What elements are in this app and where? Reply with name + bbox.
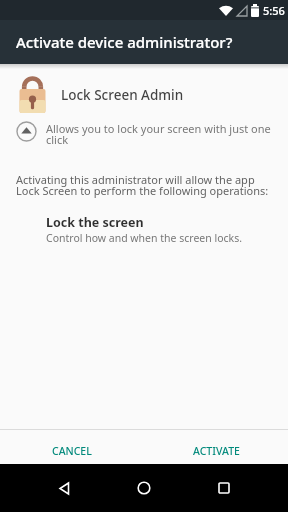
staticText: Lock the screen [46,214,144,231]
staticText: Activate device administrator? [16,32,233,52]
staticText: CANCEL [52,444,92,458]
button[interactable] [104,464,184,512]
staticText: ACTIVATE [193,444,240,458]
button[interactable] [184,464,264,512]
staticText: Activating this administrator will allow… [16,172,269,199]
button[interactable] [24,464,104,512]
button[interactable]: CANCEL [0,430,144,464]
button[interactable]: ACTIVATE [144,430,288,464]
staticText: Allows you to lock your screen with just… [46,121,271,148]
staticText: Lock Screen Admin [61,86,184,104]
staticText: 5:56 [263,3,285,18]
staticText: Control how and when the screen locks. [46,231,242,245]
